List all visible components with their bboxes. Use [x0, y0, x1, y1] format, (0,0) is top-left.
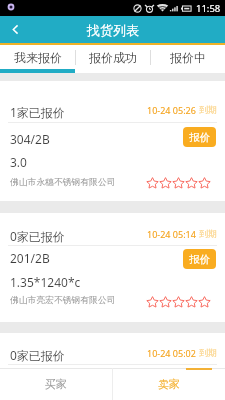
- staticText: 201/2B: [10, 250, 50, 266]
- staticText: 11:58: [196, 2, 221, 15]
- button[interactable]: 我来报价: [0, 45, 75, 69]
- staticText: 10-24 05:26: [147, 104, 196, 116]
- staticText: 买家: [45, 377, 67, 391]
- button[interactable]: 报价成功: [75, 45, 150, 69]
- staticText: 报价: [189, 253, 210, 266]
- staticText: 到期: [199, 104, 217, 115]
- staticText: 佛山市亮宏不锈钢有限公司: [10, 295, 116, 306]
- staticText: 1家已报价: [10, 104, 65, 120]
- staticText: 到期: [199, 347, 217, 358]
- button[interactable]: 报价中: [150, 45, 225, 69]
- staticText: 1.35*1240*c: [10, 274, 81, 290]
- staticText: 10-24 05:14: [147, 228, 196, 240]
- staticText: 10-24 05:02: [147, 347, 196, 359]
- staticText: 佛山市永穗不锈钢有限公司: [10, 177, 116, 188]
- button[interactable]: 买家: [0, 368, 112, 400]
- staticText: 报价: [189, 131, 210, 144]
- staticText: 报价中: [170, 50, 206, 65]
- staticText: 卖家: [158, 377, 180, 391]
- button[interactable]: 1家已报价: [0, 81, 225, 201]
- button[interactable]: 0家已报价: [0, 213, 225, 322]
- staticText: 找货列表: [87, 22, 139, 38]
- button[interactable]: Back: [0, 16, 30, 43]
- staticText: 0家已报价: [10, 228, 65, 244]
- staticText: 0家已报价: [10, 347, 65, 363]
- staticText: 我来报价: [14, 50, 62, 65]
- button[interactable]: 报价: [183, 127, 216, 147]
- staticText: 304/2B: [10, 131, 50, 147]
- staticText: 3.0: [10, 154, 27, 170]
- staticText: 到期: [199, 228, 217, 239]
- button[interactable]: 报价: [183, 249, 216, 269]
- staticText: 报价成功: [89, 50, 137, 65]
- button[interactable]: 卖家: [112, 368, 225, 400]
- button[interactable]: 0家已报价: [0, 333, 225, 368]
